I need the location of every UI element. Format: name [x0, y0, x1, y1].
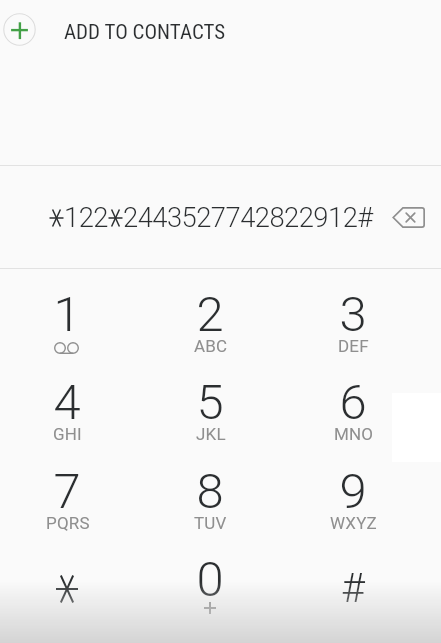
- staticText: 5: [196, 374, 224, 431]
- button[interactable]: ADD TO CONTACTS: [0, 0, 441, 65]
- button[interactable]: 3 DEF: [294, 269, 441, 357]
- button[interactable]: 2 ABC: [147, 269, 294, 357]
- staticText: MNO: [334, 424, 374, 444]
- button[interactable]: 6 MNO: [294, 357, 441, 445]
- staticText: ABC: [194, 336, 228, 356]
- staticText: 6: [339, 374, 367, 431]
- staticText: 2443527742822912#: [123, 202, 373, 234]
- staticText: JKL: [196, 424, 226, 444]
- button[interactable]: 5 JKL: [147, 357, 294, 445]
- button[interactable]: star: [0, 534, 147, 622]
- staticText: 7: [53, 463, 81, 520]
- staticText: WXYZ: [330, 513, 377, 533]
- button[interactable]: 9 WXYZ: [294, 446, 441, 534]
- staticText: 0: [196, 551, 224, 608]
- staticText: ADD TO CONTACTS: [64, 20, 226, 45]
- button[interactable]: 7 PQRS: [0, 446, 147, 534]
- button[interactable]: 8 TUV: [147, 446, 294, 534]
- staticText: 2: [196, 286, 224, 343]
- staticText: 3: [339, 286, 367, 343]
- button[interactable]: 4 GHI: [0, 357, 147, 445]
- button[interactable]: 1 voicemail: [0, 269, 147, 357]
- staticText: 1: [53, 286, 81, 343]
- staticText: DEF: [338, 336, 369, 356]
- staticText: TUV: [194, 513, 227, 533]
- staticText: GHI: [53, 424, 82, 444]
- button[interactable]: hash: [294, 534, 441, 622]
- staticText: #: [341, 564, 365, 612]
- staticText: 122: [64, 202, 108, 234]
- button[interactable]: Backspace: [386, 196, 430, 240]
- staticText: 9: [339, 463, 367, 520]
- staticText: 8: [196, 463, 224, 520]
- button[interactable]: 0 plus: [147, 534, 294, 622]
- staticText: PQRS: [46, 513, 90, 533]
- staticText: 4: [53, 374, 81, 431]
